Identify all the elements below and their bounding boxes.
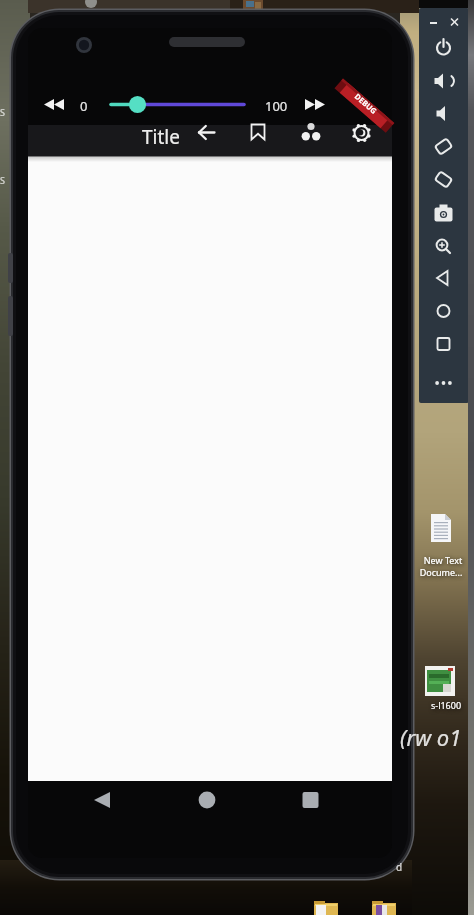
staticText: (rw o1 bbox=[400, 722, 462, 752]
button[interactable] bbox=[190, 120, 224, 154]
staticText: Docume... bbox=[413, 566, 469, 578]
button[interactable] bbox=[242, 120, 274, 154]
button[interactable] bbox=[429, 300, 458, 329]
button[interactable] bbox=[429, 67, 458, 96]
button[interactable] bbox=[295, 120, 327, 154]
button[interactable] bbox=[429, 333, 458, 362]
button[interactable] bbox=[429, 233, 458, 262]
button[interactable] bbox=[423, 664, 457, 708]
staticText: 100 bbox=[265, 97, 288, 115]
button[interactable] bbox=[429, 134, 458, 163]
button[interactable] bbox=[429, 200, 458, 229]
staticText: New Text bbox=[415, 554, 471, 566]
button[interactable] bbox=[446, 14, 462, 30]
button[interactable] bbox=[429, 167, 458, 196]
staticText: DEBUG bbox=[341, 84, 388, 126]
button[interactable] bbox=[345, 120, 377, 154]
button[interactable] bbox=[44, 92, 68, 116]
button[interactable] bbox=[429, 34, 458, 63]
staticText: S bbox=[0, 174, 5, 186]
button[interactable] bbox=[104, 90, 252, 120]
staticText: d bbox=[396, 860, 403, 874]
staticText: S bbox=[0, 106, 5, 118]
staticText: Title bbox=[142, 124, 180, 150]
button[interactable] bbox=[429, 266, 458, 295]
staticText: s-l1600 bbox=[418, 699, 474, 711]
button[interactable] bbox=[426, 510, 460, 566]
staticText: 0 bbox=[80, 97, 88, 115]
button[interactable] bbox=[429, 366, 458, 395]
button[interactable] bbox=[192, 786, 222, 816]
button[interactable] bbox=[300, 92, 328, 116]
button[interactable] bbox=[295, 786, 325, 816]
button[interactable] bbox=[429, 100, 458, 129]
button[interactable] bbox=[425, 14, 441, 30]
button[interactable] bbox=[86, 786, 116, 816]
